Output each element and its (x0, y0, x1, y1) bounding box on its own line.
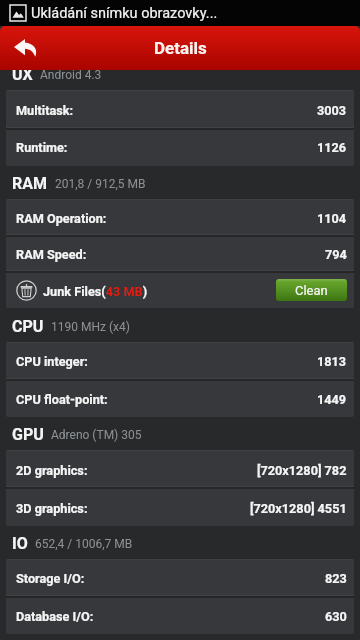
staticText: Ukládání snímku obrazovky... (31, 5, 218, 22)
staticText: 1813 (317, 354, 347, 369)
staticText: 1190 MHz (x4) (51, 320, 130, 334)
staticText: 3D graphics: (16, 501, 88, 516)
staticText: 630 (325, 609, 347, 624)
staticText: 1104 (317, 211, 347, 226)
staticText: Clean (295, 283, 328, 298)
button[interactable]: Back (0, 26, 48, 70)
staticText: Adreno (TM) 305 (51, 428, 142, 442)
staticText: 1126 (317, 140, 347, 155)
staticText: [720x1280] 4551 (250, 501, 347, 516)
button[interactable]: 3D graphics: (6, 488, 354, 526)
button[interactable]: Junk Files(43 MB) (6, 272, 354, 308)
button[interactable]: Storage I/O: (6, 559, 354, 596)
staticText: RAM Speed: (16, 247, 87, 262)
staticText: [720x1280] 782 (257, 463, 347, 478)
staticText: RAM Operation: (16, 211, 107, 226)
button[interactable]: Clean (276, 279, 347, 301)
staticText: CPU (12, 317, 44, 336)
staticText: CPU integer: (16, 354, 88, 369)
button[interactable]: Multitask: (6, 90, 354, 128)
button[interactable]: 2D graphics: (6, 450, 354, 488)
staticText: IO (12, 534, 28, 553)
staticText: 1449 (317, 392, 347, 407)
staticText: Details (154, 38, 207, 58)
staticText: Database I/O: (16, 609, 94, 624)
button[interactable]: RAM Operation: (6, 199, 354, 235)
staticText: 3003 (317, 103, 347, 118)
staticText: RAM (12, 174, 48, 193)
staticText: 794 (325, 247, 347, 262)
button[interactable]: Runtime: (6, 128, 354, 165)
button[interactable]: RAM Speed: (6, 235, 354, 272)
staticText: 2D graphics: (16, 463, 88, 478)
staticText: 652,4 / 1006,7 MB (35, 537, 133, 551)
staticText: Junk Files(43 MB) (43, 284, 148, 299)
button[interactable]: CPU float-point: (6, 379, 354, 417)
staticText: Storage I/O: (16, 571, 85, 586)
staticText: Android 4.3 (40, 68, 102, 82)
button[interactable]: Database I/O: (6, 596, 354, 634)
staticText: GPU (12, 425, 44, 444)
staticText: UX (12, 65, 33, 84)
staticText: CPU float-point: (16, 392, 108, 407)
staticText: 201,8 / 912,5 MB (55, 177, 146, 191)
staticText: Multitask: (16, 103, 74, 118)
staticText: 823 (325, 571, 347, 586)
staticText: Runtime: (16, 140, 68, 155)
button[interactable]: CPU integer: (6, 342, 354, 379)
